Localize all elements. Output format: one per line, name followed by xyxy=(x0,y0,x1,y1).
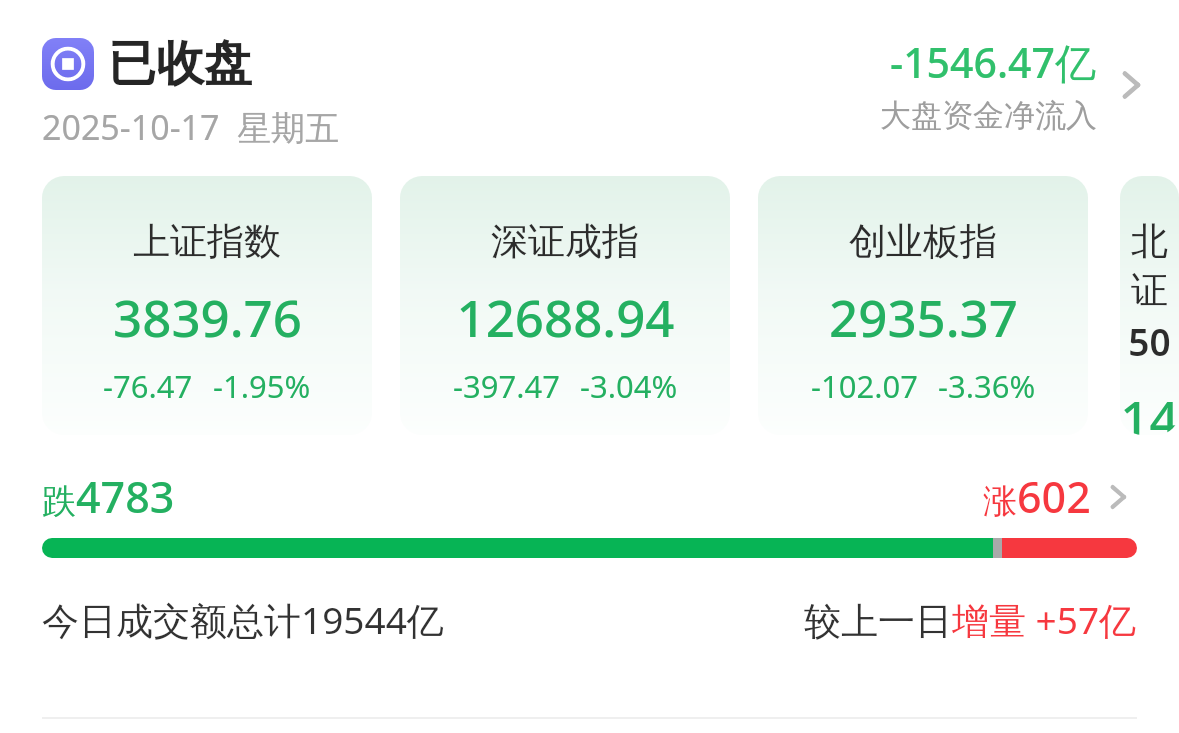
button[interactable]: 跌4783 xyxy=(42,467,1137,558)
staticText: 大盘资金净流入 xyxy=(880,96,1097,135)
staticText: 深证成指 xyxy=(491,218,639,265)
staticText: -1.95% xyxy=(213,365,311,407)
button[interactable]: 创业板指 xyxy=(758,176,1088,435)
other: 大盘资金净流入详情 xyxy=(1109,63,1153,107)
button[interactable]: 北证50 xyxy=(1120,176,1179,435)
staticText: -1546.47亿 xyxy=(890,34,1097,90)
staticText: -76.47 xyxy=(103,365,193,407)
staticText: 今日成交额总计19544亿 xyxy=(42,594,444,645)
staticText: 北证50 xyxy=(1120,218,1179,366)
staticText: 创业板指 xyxy=(849,218,997,265)
staticText: 2025-10-17 星期五 xyxy=(42,104,340,150)
staticText: 3839.76 xyxy=(113,282,302,351)
staticText: 已收盘 xyxy=(108,34,252,94)
staticText: 2935.37 xyxy=(829,282,1018,351)
staticText: -3.04% xyxy=(580,365,678,407)
staticText: 1443.20 xyxy=(1120,383,1179,435)
staticText: 跌4783 xyxy=(42,467,175,526)
staticText: -3.36% xyxy=(938,365,1036,407)
staticText: 较上一日增量 +57亿 xyxy=(804,594,1137,645)
staticText: 涨602 xyxy=(983,467,1091,526)
staticText: 上证指数 xyxy=(133,218,281,265)
button[interactable]: 深证成指 xyxy=(400,176,730,435)
button[interactable]: -1546.47亿 xyxy=(880,34,1153,135)
staticText: -102.07 xyxy=(811,365,918,407)
button[interactable]: 上证指数 xyxy=(42,176,372,435)
staticText: 12688.94 xyxy=(456,282,675,351)
staticText: -397.47 xyxy=(453,365,560,407)
